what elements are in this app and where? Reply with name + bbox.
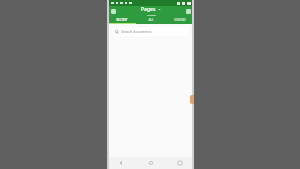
staticText: ALL [148,18,154,22]
staticText: subtitle [147,13,156,16]
button[interactable]: Search documents [112,27,189,36]
staticText: SHARED [174,18,186,22]
button[interactable]: Back [117,159,125,167]
button[interactable]: Handle [190,95,194,104]
button[interactable]: Recents [176,159,184,167]
button[interactable]: ALL [136,16,165,23]
button[interactable]: Add [185,8,191,14]
staticText: RECENT [116,18,128,22]
button[interactable]: SHARED [165,16,194,23]
staticText: Pages [141,6,156,13]
button[interactable]: RECENT [107,16,136,23]
button[interactable]: Account [110,8,116,14]
staticText: Search documents [121,29,152,34]
button[interactable]: Home [147,159,155,167]
